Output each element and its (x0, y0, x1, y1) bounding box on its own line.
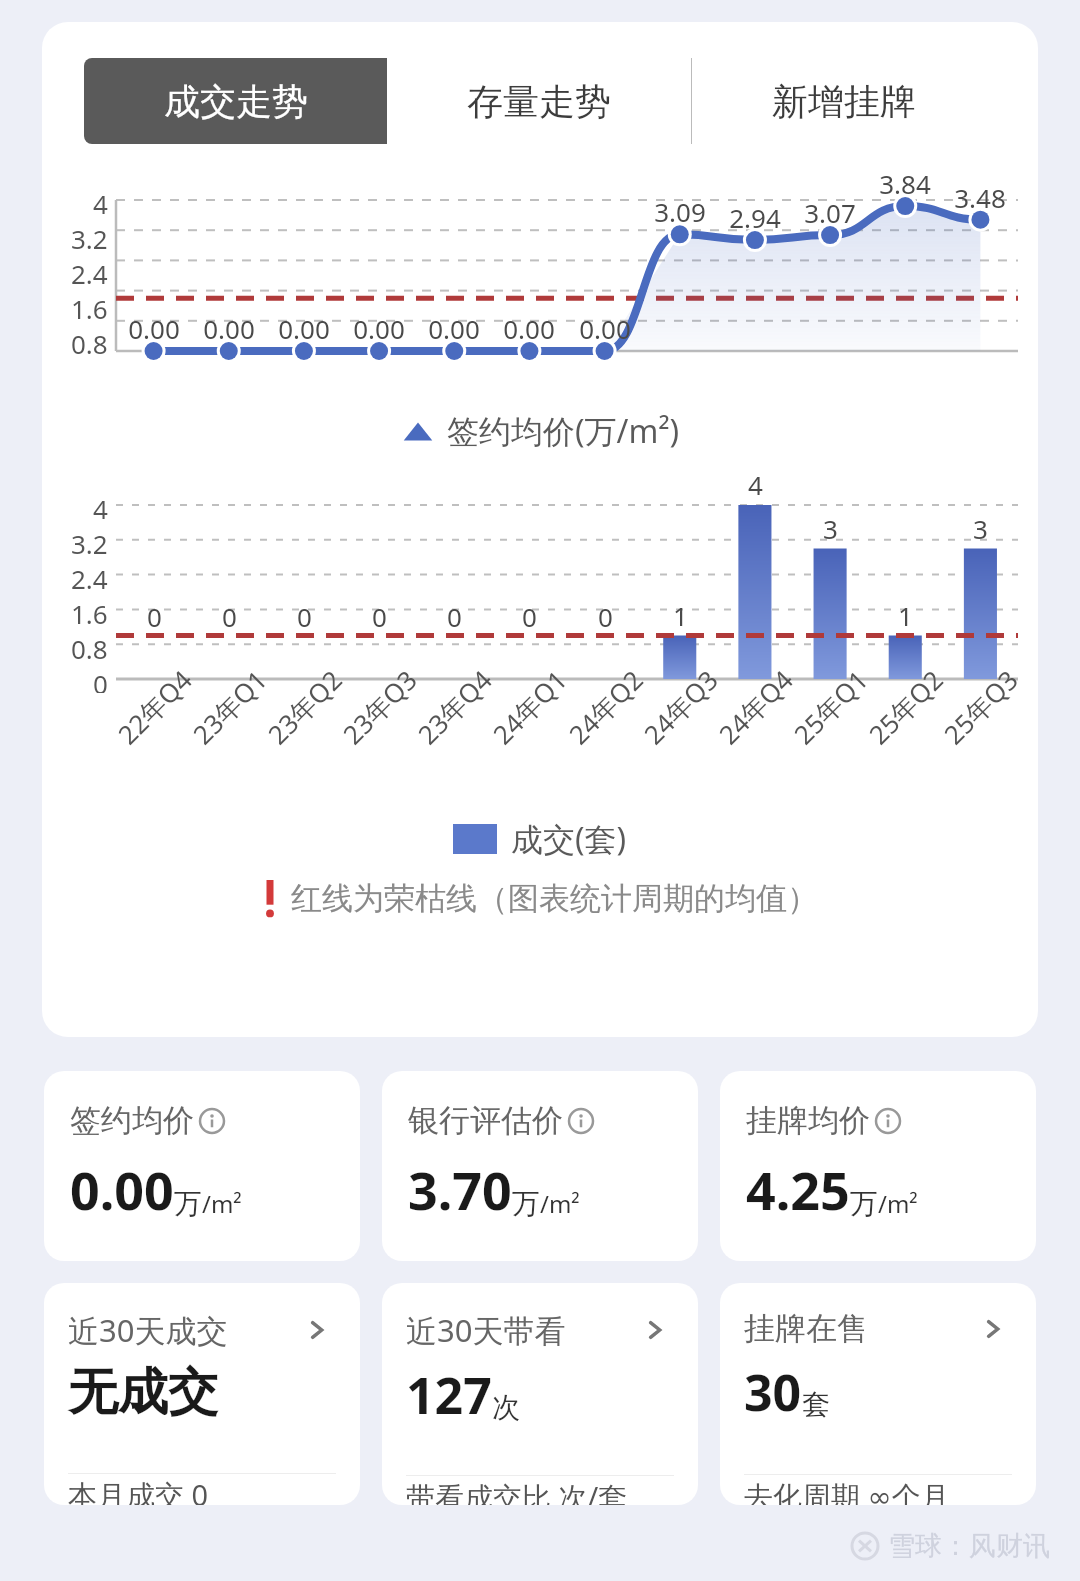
staticText: 3.2 (71, 526, 108, 561)
other: 挂牌在售 (980, 1316, 1006, 1342)
staticText: 1.6 (71, 291, 108, 326)
button[interactable]: 挂牌在售 (720, 1283, 1036, 1505)
staticText: 1.6 (71, 596, 108, 631)
staticText: 2.4 (71, 256, 108, 291)
staticText: 成交(套) (511, 817, 627, 861)
staticText: 0.8 (71, 326, 108, 361)
staticText: 次 (492, 1390, 520, 1425)
staticText: 24年Q1 (485, 662, 574, 752)
staticText: 红线为荣枯线（图表统计周期的均值） (291, 879, 818, 918)
staticText: 0 (522, 599, 537, 634)
staticText: 挂牌在售 (744, 1309, 868, 1348)
staticText: 0.8 (71, 631, 108, 666)
staticText: 万 (512, 1186, 540, 1221)
staticText: 万 (850, 1186, 878, 1221)
staticText: 0 (93, 666, 108, 693)
staticText: 挂牌均价 (746, 1101, 870, 1140)
other: 近30天成交 (304, 1317, 330, 1343)
staticText: /m² (540, 1187, 580, 1220)
staticText: 2.94 (729, 200, 781, 235)
staticText: 成交走势 (164, 79, 308, 124)
staticText: 雪球：风财讯 (888, 1529, 1050, 1563)
staticText: 25年Q1 (786, 662, 875, 752)
staticText: 4 (748, 467, 763, 502)
button[interactable]: 近30天带看 (382, 1283, 698, 1505)
button[interactable]: 签约均价 (44, 1071, 360, 1261)
staticText: 3 (823, 511, 838, 546)
staticText: 0 (447, 599, 462, 634)
staticText: 0.00 (128, 311, 180, 346)
staticText: 0.00 (278, 311, 330, 346)
staticText: 近30天成交 (68, 1309, 228, 1351)
staticText: 24年Q2 (561, 662, 650, 752)
staticText: /m² (202, 1187, 242, 1220)
button[interactable]: 近30天成交 (44, 1283, 360, 1505)
staticText: 3.70 (408, 1154, 512, 1225)
staticText: 23年Q4 (410, 662, 499, 752)
button[interactable]: 挂牌均价 (720, 1071, 1036, 1261)
staticText: 0.00 (203, 311, 255, 346)
staticText: 2.4 (71, 561, 108, 596)
staticText: 0 (147, 599, 162, 634)
staticText: 3.84 (879, 166, 931, 201)
staticText: 签约均价 (70, 1101, 194, 1140)
staticText: 24年Q3 (636, 662, 725, 752)
staticText: 25年Q2 (861, 662, 950, 752)
staticText: 24年Q4 (711, 662, 800, 752)
staticText: 0.00 (503, 311, 555, 346)
staticText: 25年Q3 (936, 662, 1025, 752)
button[interactable]: 新增挂牌 (692, 58, 996, 144)
staticText: 0.00 (428, 311, 480, 346)
staticText: 带看成交比 次/套 (406, 1477, 628, 1505)
staticText: 4 (93, 186, 108, 221)
staticText: 新增挂牌 (772, 79, 916, 124)
staticText: 无成交 (68, 1361, 218, 1424)
other: 近30天带看 (642, 1317, 668, 1343)
staticText: 本月成交 0 (68, 1475, 209, 1505)
staticText: 4 (93, 491, 108, 526)
staticText: 签约均价(万/m²) (447, 409, 680, 453)
staticText: 3.48 (954, 180, 1006, 215)
staticText: 3 (973, 511, 988, 546)
button[interactable]: 银行评估价 (382, 1071, 698, 1261)
staticText: 近30天带看 (406, 1309, 566, 1351)
staticText: 0.00 (353, 311, 405, 346)
staticText: 0 (297, 599, 312, 634)
staticText: 23年Q3 (335, 662, 424, 752)
staticText: 0 (598, 599, 613, 634)
staticText: 银行评估价 (408, 1101, 563, 1140)
staticText: 万 (174, 1186, 202, 1221)
staticText: 0 (372, 599, 387, 634)
staticText: 1 (673, 598, 688, 633)
staticText: 3.07 (804, 195, 856, 230)
button[interactable]: 成交走势 (84, 58, 387, 144)
staticText: 0.00 (70, 1154, 174, 1225)
staticText: 30 (744, 1358, 802, 1426)
staticText: /m² (878, 1187, 918, 1220)
staticText: 套 (802, 1387, 830, 1422)
staticText: 23年Q2 (260, 662, 349, 752)
staticText: 3.2 (71, 221, 108, 256)
staticText: 4.25 (746, 1154, 850, 1225)
staticText: 127 (406, 1361, 492, 1429)
staticText: 23年Q1 (185, 662, 274, 752)
staticText: 存量走势 (467, 79, 611, 124)
staticText: 去化周期 ∞个月 (744, 1476, 950, 1505)
staticText: 3.09 (654, 194, 706, 229)
staticText: 0 (222, 599, 237, 634)
staticText: 0.00 (579, 311, 631, 346)
staticText: 1 (898, 598, 913, 633)
staticText: 22年Q4 (110, 662, 199, 752)
button[interactable]: 存量走势 (387, 58, 691, 144)
